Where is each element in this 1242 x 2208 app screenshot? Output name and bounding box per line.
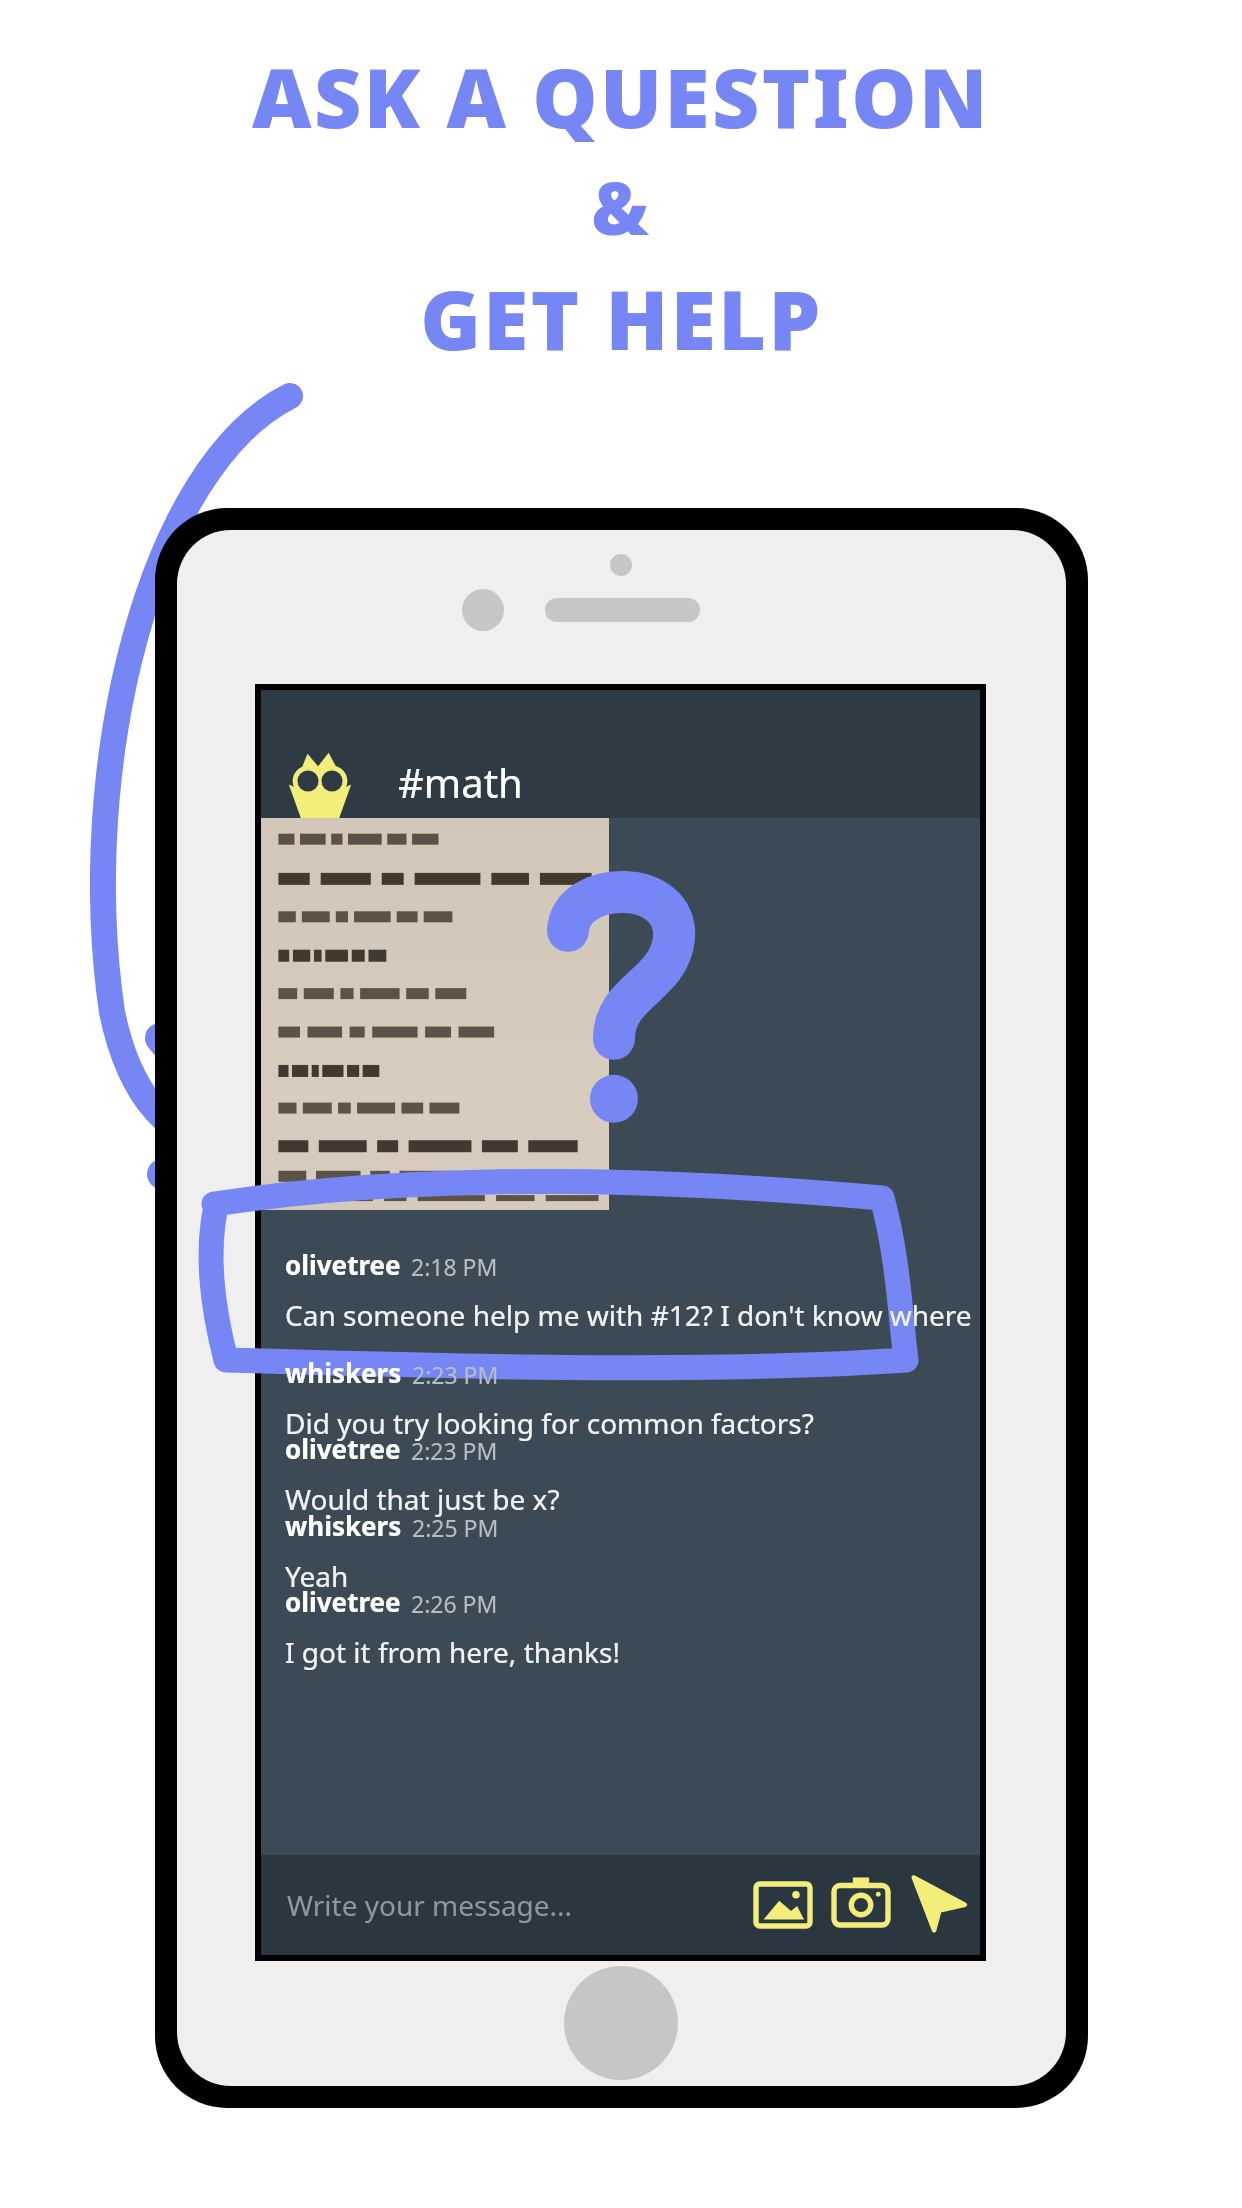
staticText: #math [398,755,523,809]
staticText: whiskers [285,1355,402,1390]
staticText: olivetree [285,1584,401,1619]
staticText: & [591,158,651,256]
button[interactable]: olivetree [285,1431,975,1518]
staticText: Would that just be x? [285,1480,560,1518]
button[interactable]: Take photo [829,1873,893,1937]
staticText: Write your message... [287,1886,573,1924]
button[interactable]: olivetree [285,1247,975,1334]
staticText: GET HELP [420,262,823,374]
staticText: 2:23 PM [412,1359,499,1390]
staticText: 2:25 PM [412,1512,499,1543]
button[interactable] [261,690,980,818]
staticText: ASK A QUESTION [252,40,990,152]
staticText: olivetree [285,1431,401,1466]
staticText: whiskers [285,1508,402,1543]
button[interactable]: whiskers [285,1355,975,1442]
staticText: I got it from here, thanks! [285,1633,620,1671]
staticText: olivetree [285,1247,401,1282]
button[interactable]: Send message [905,1873,969,1937]
staticText: Can someone help me with #12? I don't kn… [285,1296,975,1334]
staticText: 2:26 PM [411,1588,498,1619]
staticText: Did you try looking for common factors? [285,1404,814,1442]
button[interactable]: whiskers [285,1508,975,1595]
staticText: Yeah [285,1557,349,1595]
button[interactable]: Attach image [751,1873,815,1937]
staticText: 2:18 PM [411,1251,498,1282]
button[interactable]: Write your message... [261,1855,980,1955]
staticText: 2:23 PM [411,1435,498,1466]
button[interactable]: olivetree [285,1584,975,1671]
